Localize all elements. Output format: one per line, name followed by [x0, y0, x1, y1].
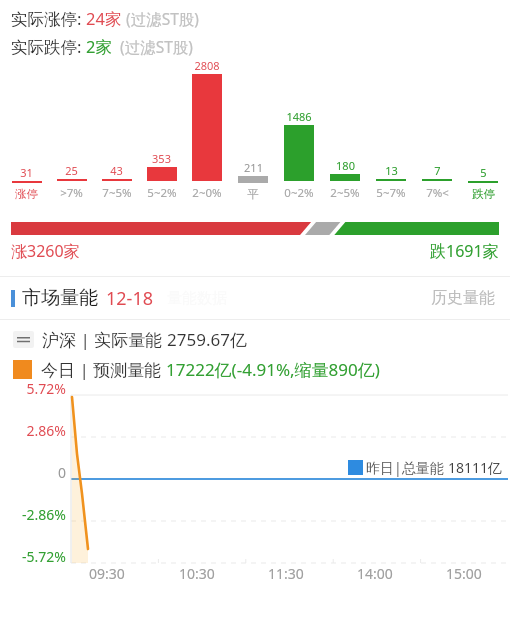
staticText: 实际跌停:	[11, 35, 86, 58]
staticText: 涨3260家	[11, 240, 80, 262]
staticText: 沪深 | 实际量能	[42, 328, 167, 351]
staticText: 43	[110, 163, 123, 178]
staticText: 0~2%	[284, 185, 314, 201]
staticText: 211	[244, 160, 263, 175]
staticText: 09:30	[89, 564, 125, 583]
staticText: 2808	[194, 58, 220, 73]
staticText: 12-18	[106, 286, 153, 311]
staticText: 17222亿(-4.91%,缩量890亿)	[166, 358, 380, 381]
staticText: 5.72%	[26, 379, 66, 398]
button[interactable]: 切换	[13, 331, 34, 348]
staticText: -5.72%	[22, 547, 66, 566]
staticText: 市场量能	[22, 286, 98, 310]
staticText: 0	[57, 463, 66, 482]
staticText: 涨停	[15, 187, 38, 201]
staticText: 31	[20, 165, 33, 180]
staticText: 18111亿	[448, 458, 503, 477]
staticText: 跌1691家	[430, 240, 499, 262]
staticText: 15:00	[446, 564, 482, 583]
staticText: 5~2%	[147, 185, 177, 201]
button[interactable]: 历史量能	[427, 284, 499, 312]
staticText: 5~7%	[376, 185, 406, 201]
staticText: (过滤ST股)	[112, 36, 193, 57]
staticText: 今日 | 预测量能	[41, 358, 166, 381]
staticText: 13	[385, 163, 398, 178]
staticText: 平	[247, 187, 259, 201]
staticText: 1486	[286, 109, 312, 124]
staticText: 跌停	[472, 187, 495, 201]
staticText: -2.86%	[22, 505, 66, 524]
staticText: 2~5%	[330, 185, 360, 201]
staticText: 180	[336, 158, 355, 173]
staticText: 10:30	[179, 564, 215, 583]
staticText: 2759.67亿	[167, 328, 247, 351]
staticText: 2~0%	[192, 185, 222, 201]
staticText: 14:00	[357, 564, 393, 583]
staticText: 11:30	[268, 564, 304, 583]
staticText: 5	[480, 165, 487, 180]
staticText: 实际涨停:	[11, 7, 86, 30]
staticText: 7~5%	[102, 185, 132, 201]
staticText: 2.86%	[26, 421, 66, 440]
staticText: 24家	[86, 7, 122, 30]
staticText: 25	[65, 163, 78, 178]
staticText: 7	[434, 163, 441, 178]
staticText: (过滤ST股)	[122, 8, 199, 29]
staticText: 353	[152, 151, 171, 166]
staticText: >7%	[60, 185, 83, 201]
staticText: 7%<	[426, 185, 449, 201]
button[interactable]: 昨日|总量能	[348, 458, 503, 477]
staticText: 历史量能	[431, 288, 495, 308]
staticText: 昨日|总量能	[366, 458, 448, 477]
staticText: 2家	[86, 35, 112, 58]
